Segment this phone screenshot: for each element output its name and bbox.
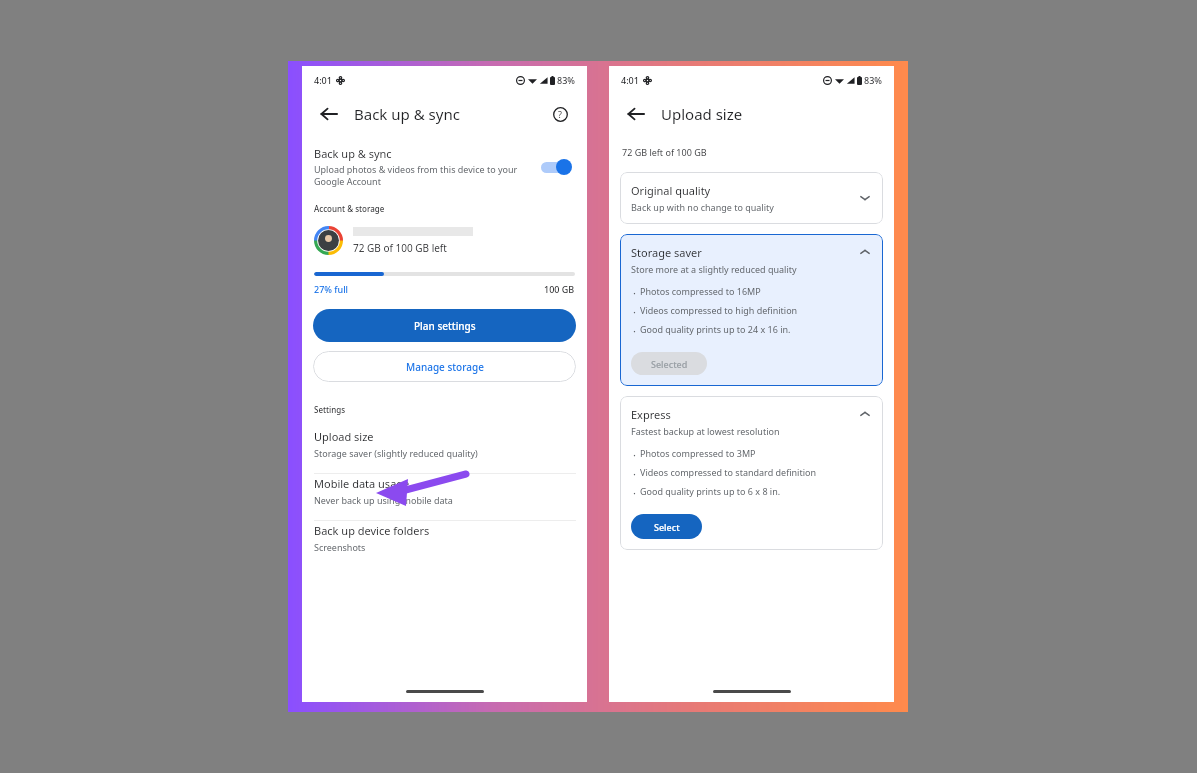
staticText: 4:01 [314,74,332,86]
staticText: Select [654,521,680,533]
staticText: 72 GB left of 100 GB [622,146,707,158]
button[interactable]: Select [631,514,702,539]
button[interactable]: Selected [631,352,707,375]
staticText: Selected [651,358,688,370]
staticText: Upload photos & videos from this device … [314,163,533,187]
button[interactable]: Original quality [620,172,883,224]
staticText: Storage saver [631,245,702,260]
staticText: · [633,447,636,462]
staticText: Fastest backup at lowest resolution [631,425,780,437]
staticText: Videos compressed to standard definition [640,466,817,478]
button[interactable]: Back [623,101,649,127]
staticText: Plan settings [414,319,476,333]
staticText: Original quality [631,183,711,198]
staticText: · [633,304,636,319]
button[interactable]: Upload size [302,427,587,473]
staticText: Back up device folders [314,523,430,538]
button[interactable]: Manage storage [313,351,576,382]
staticText: Back up with no change to quality [631,201,774,213]
button[interactable]: Mobile data usage [302,474,587,520]
staticText: Screenshots [314,541,366,553]
staticText: Account & storage [314,203,385,214]
staticText: Manage storage [406,360,484,374]
staticText: Good quality prints up to 6 x 8 in. [640,485,781,497]
staticText: Never back up using mobile data [314,494,453,506]
button[interactable]: Help [547,101,573,127]
staticText: 83% [864,74,882,86]
staticText: · [633,485,636,500]
staticText: 83% [557,74,575,86]
staticText: Back up & sync [314,146,392,161]
staticText: Good quality prints up to 24 x 16 in. [640,323,791,335]
staticText: Upload size [661,104,743,124]
staticText: · [633,285,636,300]
button[interactable]: Back [316,101,342,127]
staticText: 100 GB [544,283,575,295]
staticText: Store more at a slightly reduced quality [631,263,797,275]
staticText: Storage saver (slightly reduced quality) [314,447,478,459]
staticText: · [633,466,636,481]
button[interactable]: Back up device folders [302,521,587,567]
staticText: Photos compressed to 16MP [640,285,761,297]
staticText: Upload size [314,429,374,444]
staticText: 4:01 [621,74,639,86]
staticText: Settings [314,404,346,415]
staticText: ? [558,108,562,120]
staticText: Express [631,407,671,422]
staticText: Videos compressed to high definition [640,304,798,316]
staticText: Back up & sync [354,104,460,124]
staticText: 27% full [314,283,349,295]
staticText: Mobile data usage [314,476,410,491]
staticText: · [633,323,636,338]
button[interactable]: Storage saver [620,234,883,386]
staticText: Photos compressed to 3MP [640,447,756,459]
button[interactable]: Express [620,396,883,550]
button[interactable]: Back up & sync [302,144,587,189]
staticText: 72 GB of 100 GB left [353,241,447,255]
button[interactable]: Plan settings [313,309,576,342]
